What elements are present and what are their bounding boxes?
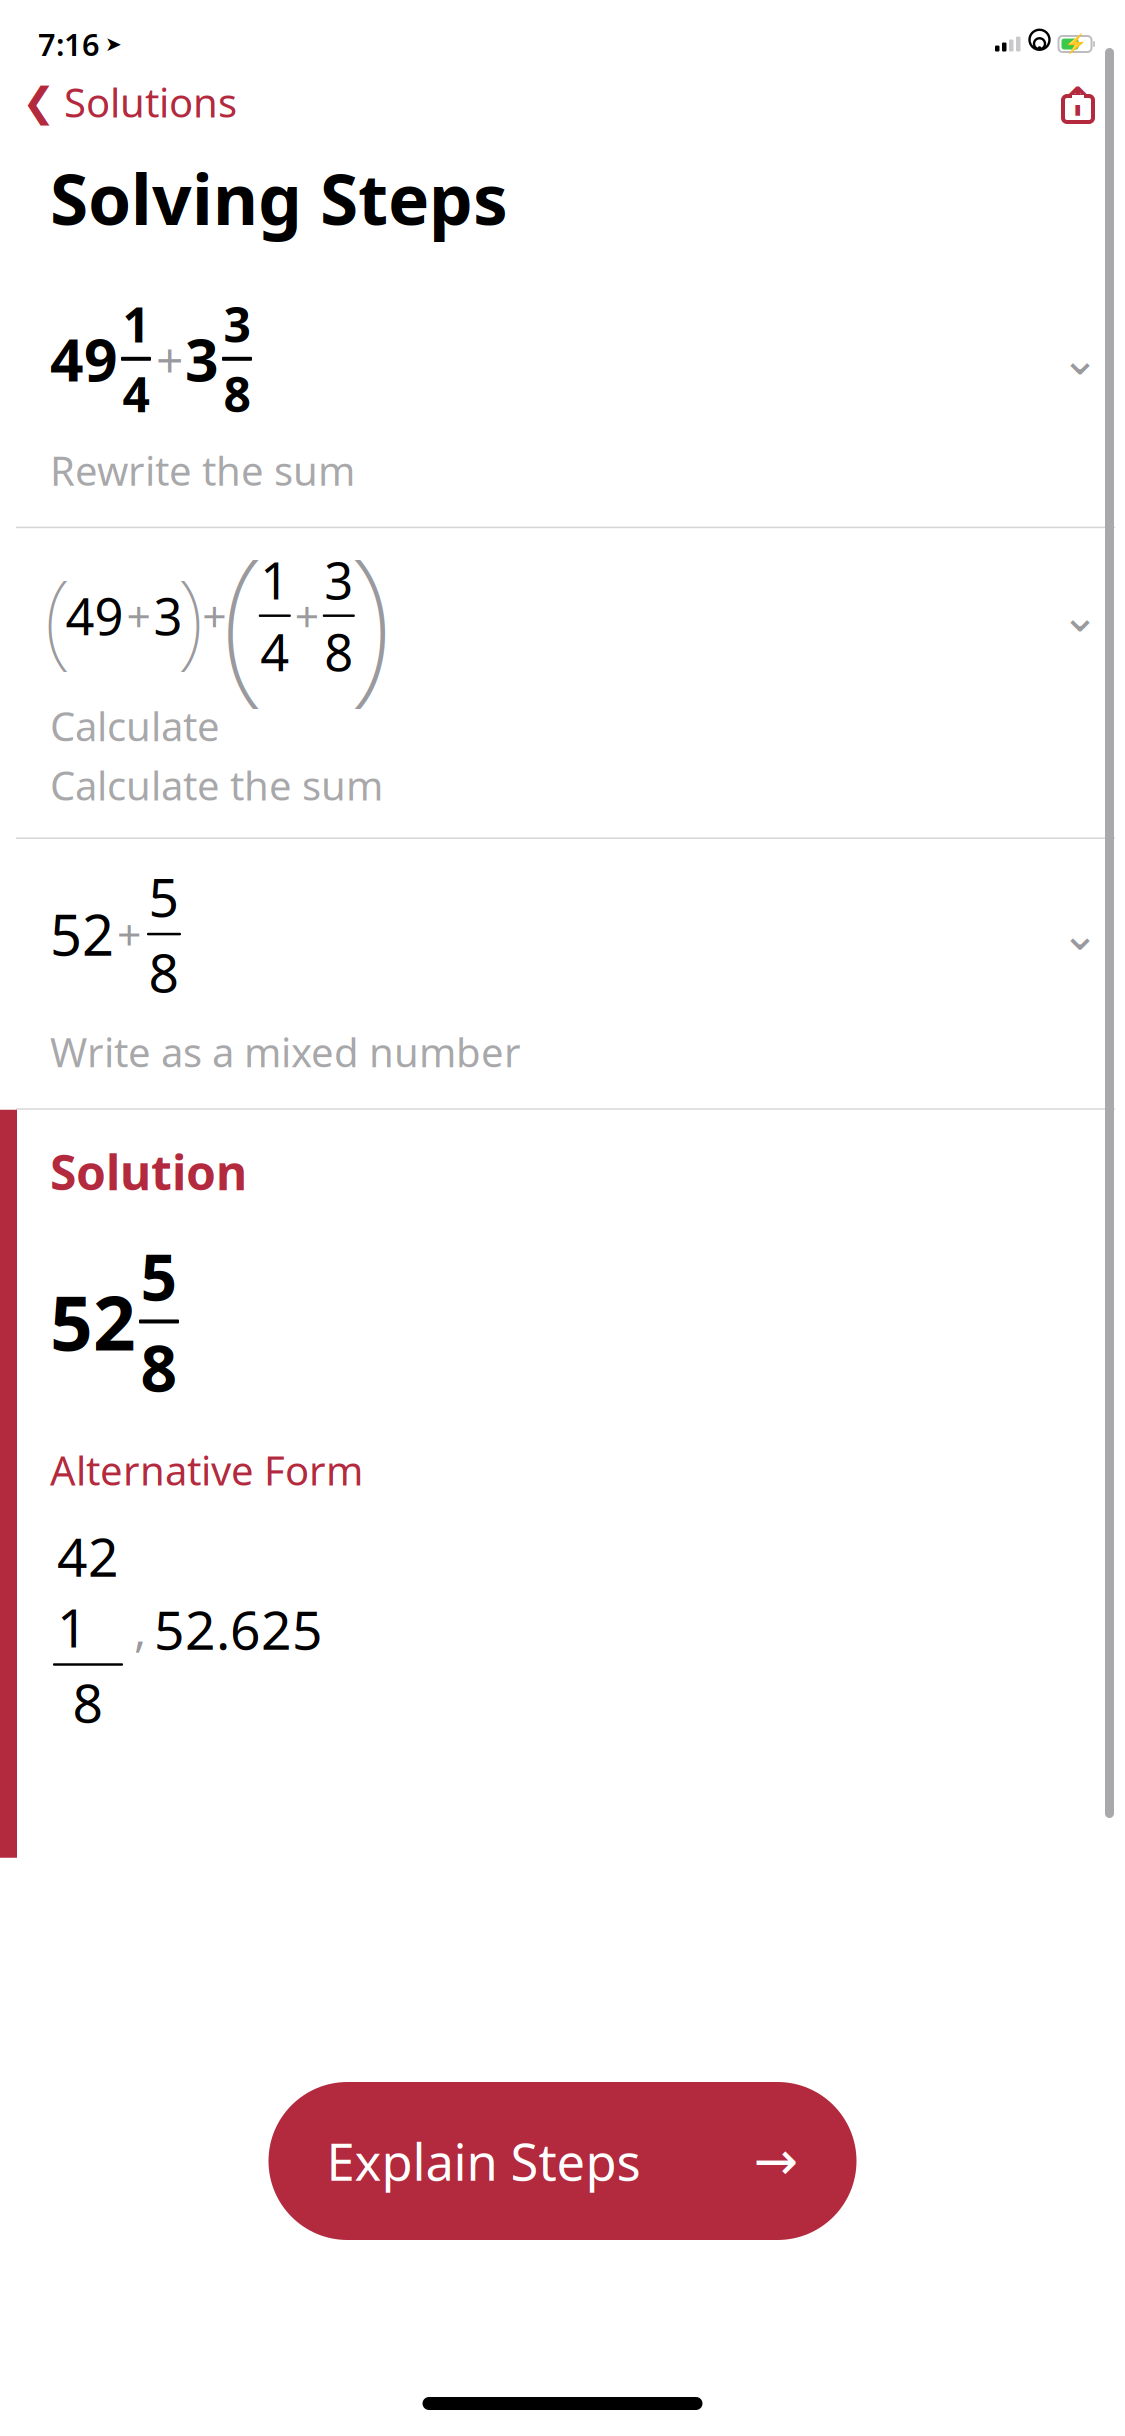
staticText: Calculate the sum — [50, 758, 383, 811]
button[interactable]: ( — [0, 528, 1125, 837]
staticText: ➤ — [105, 33, 122, 55]
staticText: ↑ — [1061, 79, 1095, 125]
staticText: 8 — [140, 1324, 177, 1409]
staticText: 52 — [50, 1272, 136, 1371]
staticText: 3 — [185, 320, 219, 398]
staticText: Rewrite the sum — [50, 444, 355, 497]
staticText: 4 — [122, 362, 149, 425]
staticText: 49 — [50, 320, 118, 398]
staticText: 3 — [324, 546, 353, 613]
staticText: 3 — [154, 582, 183, 649]
staticText: + — [117, 906, 141, 962]
staticText: 8 — [148, 936, 179, 1007]
staticText: ( — [44, 547, 71, 685]
staticText: Solutions — [64, 75, 237, 128]
staticText: 8 — [324, 618, 353, 685]
staticText: ) — [349, 502, 393, 729]
staticText: 52 — [50, 897, 114, 971]
staticText: + — [295, 587, 319, 644]
staticText: ) — [177, 547, 204, 685]
staticText: Write as a mixed number — [50, 1025, 521, 1078]
button[interactable]: 52 — [0, 839, 1125, 1108]
staticText: Calculate — [50, 699, 220, 752]
staticText: 5 — [140, 1233, 177, 1318]
staticText: + — [127, 587, 151, 644]
staticText: 5 — [148, 861, 179, 932]
staticText: 3 — [223, 292, 250, 356]
staticText: 421 — [57, 1521, 119, 1662]
staticText: 52.625 — [154, 1594, 323, 1664]
staticText: ❮ — [22, 79, 56, 125]
staticText: 1 — [122, 292, 149, 356]
button[interactable]: 49 — [0, 270, 1125, 527]
staticText: → — [753, 2131, 798, 2191]
staticText: 8 — [72, 1667, 103, 1737]
staticText: Alternative Form — [50, 1443, 363, 1497]
staticText: Explain Steps — [326, 2127, 640, 2195]
staticText: , — [134, 1599, 146, 1659]
staticText: 4 — [260, 618, 289, 685]
staticText: ⌄ — [1061, 590, 1099, 641]
staticText: 8 — [223, 362, 250, 425]
staticText: + — [202, 587, 226, 644]
staticText: Solving Steps — [50, 152, 508, 244]
button[interactable]: Share — [1061, 78, 1125, 126]
staticText: ( — [221, 502, 265, 729]
staticText: 7:16 — [38, 24, 100, 64]
staticText: ⌄ — [1061, 908, 1099, 960]
staticText: 1 — [260, 546, 289, 613]
button[interactable]: ❮ — [0, 67, 237, 136]
button[interactable]: Explain Steps — [268, 2082, 856, 2240]
staticText: 49 — [66, 582, 124, 649]
staticText: + — [156, 327, 183, 391]
staticText: ⌄ — [1061, 333, 1099, 385]
staticText: ⚡ — [1063, 33, 1086, 55]
staticText: Solution — [50, 1140, 247, 1203]
